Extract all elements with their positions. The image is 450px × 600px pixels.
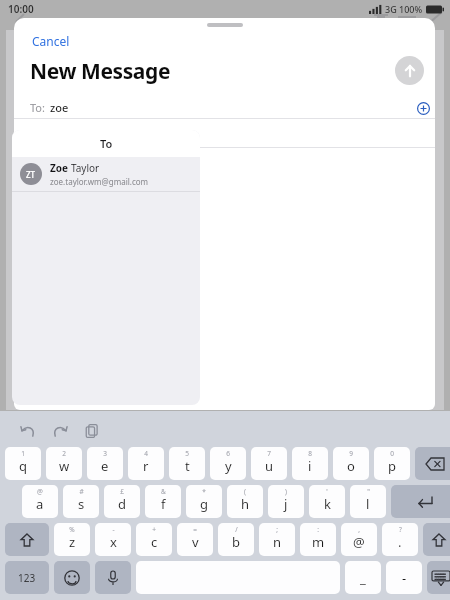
staticText: : [317,525,319,534]
button[interactable]: + [136,523,172,556]
staticText: ) [285,487,287,496]
staticText: j [284,495,288,513]
button[interactable]: # [63,485,99,518]
button[interactable]: 1 [5,447,41,480]
staticText: zoe.taylor.wm@gmail.com [50,176,149,187]
button[interactable]: ? [382,523,418,556]
staticText: Zoe [50,161,71,175]
button[interactable]: Redo [50,421,70,441]
staticText: c [151,533,158,551]
button[interactable]: : [300,523,336,556]
staticText: t [185,457,190,475]
staticText: 8 [308,449,312,458]
staticText: ZT [26,169,36,180]
button[interactable]: / [218,523,254,556]
staticText: x [110,533,117,551]
button[interactable]: mic [95,561,131,594]
staticText: 1 [21,449,25,458]
staticText: n [273,533,282,551]
button[interactable]: - [386,561,422,594]
button[interactable]: = [177,523,213,556]
staticText: + [152,525,156,534]
button[interactable]: 8 [292,447,328,480]
button[interactable]: 7 [251,447,287,480]
button[interactable]: 9 [333,447,369,480]
button[interactable]: 123 [5,561,49,594]
staticText: To: [30,100,45,115]
button[interactable]: 0 [374,447,410,480]
button[interactable]: ZT [12,157,200,191]
button[interactable]: shift [423,523,450,556]
staticText: u [265,457,274,475]
button[interactable]: % [54,523,90,556]
button[interactable]: 6 [210,447,246,480]
button[interactable]: 4 [128,447,164,480]
button[interactable]: & [145,485,181,518]
staticText: m [312,533,325,551]
button[interactable]: ; [259,523,295,556]
staticText: zoe [50,100,69,115]
button[interactable]: Paste [82,421,102,441]
button[interactable]: Add contact [412,97,434,119]
staticText: * [202,487,206,496]
staticText: = [193,525,197,534]
button[interactable]: @ [22,485,58,518]
staticText: f [161,495,166,513]
button[interactable]: Cancel [28,30,74,52]
staticText: 9 [349,449,353,458]
staticText: b [232,533,240,551]
staticText: s [78,495,85,513]
staticText: ( [244,487,246,496]
staticText: 5 [185,449,189,458]
staticText: k [324,495,331,513]
staticText: 3 [103,449,107,458]
staticText: / [235,525,238,534]
button[interactable]: £ [104,485,140,518]
button[interactable]: * [186,485,222,518]
staticText: 3G 100% [385,3,423,15]
staticText: q [19,457,27,475]
staticText: - [402,569,407,587]
staticText: Taylor [71,161,100,175]
staticText: h [241,495,250,513]
button[interactable]: , [341,523,377,556]
staticText: New Message [30,57,171,86]
button[interactable]: 2 [46,447,82,480]
button[interactable]: ) [268,485,304,518]
staticText: y [225,457,232,475]
button[interactable]: _ [345,561,381,594]
staticText: ; [276,525,278,534]
staticText: 123 [18,571,36,585]
staticText: e [101,457,109,475]
button[interactable]: Send [395,56,424,85]
staticText: g [200,495,208,513]
button[interactable]: 3 [87,447,123,480]
button[interactable]: ' [309,485,345,518]
staticText: ' [326,487,328,496]
staticText: l [366,495,370,513]
button[interactable]: dismiss [427,561,450,594]
staticText: w [59,457,70,475]
button[interactable]: backspace [415,447,450,480]
button[interactable]: return [391,485,450,518]
button[interactable]: - [95,523,131,556]
staticText: . [398,533,402,551]
button[interactable]: Undo [18,421,38,441]
staticText: @ [353,533,365,551]
button[interactable]: shift [5,523,49,556]
button[interactable]: 5 [169,447,205,480]
staticText: Cancel [32,33,70,49]
staticText: d [118,495,126,513]
staticText: % [69,525,75,534]
button[interactable]: ( [227,485,263,518]
button[interactable]: emoji [54,561,90,594]
button[interactable]: To: [14,97,435,118]
button[interactable]: " [350,485,386,518]
staticText: 6 [226,449,230,458]
staticText: 2 [62,449,66,458]
staticText: To [100,136,113,151]
staticText: " [367,487,370,496]
staticText: v [192,533,199,551]
staticText: i [308,457,312,475]
